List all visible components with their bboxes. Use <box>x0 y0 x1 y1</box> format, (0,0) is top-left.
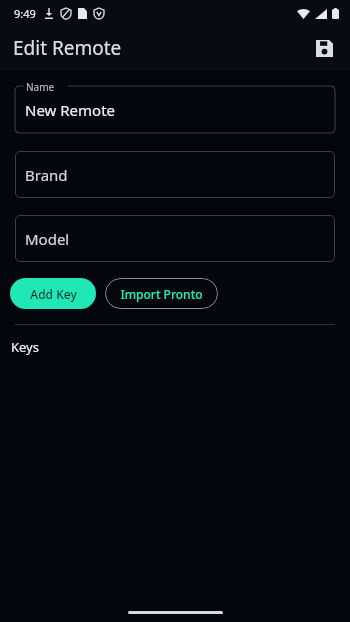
staticText: New Remote <box>25 100 116 120</box>
button[interactable]: Model <box>15 215 335 262</box>
button[interactable]: Save <box>306 30 342 66</box>
staticText: Name <box>26 80 55 94</box>
staticText: Edit Remote <box>13 35 122 61</box>
staticText: Keys <box>11 338 39 356</box>
staticText: Brand <box>25 165 68 185</box>
button[interactable]: Brand <box>15 151 335 198</box>
button[interactable]: Import Pronto <box>105 278 218 309</box>
button[interactable]: Add Key <box>10 278 96 309</box>
staticText: Model <box>25 229 70 249</box>
staticText: Add Key <box>30 286 77 302</box>
staticText: 9:49 <box>14 6 36 21</box>
staticText: Import Pronto <box>120 286 203 302</box>
